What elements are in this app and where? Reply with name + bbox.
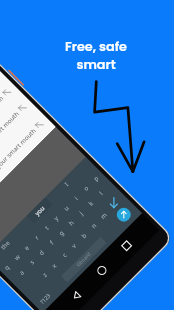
staticText: b xyxy=(79,231,88,239)
staticText: k xyxy=(86,198,95,207)
button[interactable]: Home xyxy=(93,262,110,279)
staticText: h xyxy=(66,218,75,227)
staticText: i xyxy=(72,194,79,201)
staticText: bad mouth xyxy=(0,94,4,187)
staticText: t xyxy=(42,223,50,231)
staticText: v xyxy=(69,241,78,249)
staticText: c xyxy=(60,251,68,258)
staticText: w xyxy=(12,252,21,261)
button[interactable]: Back xyxy=(68,287,85,304)
staticText: x xyxy=(49,261,58,269)
button[interactable]: Recent apps xyxy=(118,237,135,254)
staticText: o xyxy=(81,184,90,192)
staticText: j xyxy=(77,209,84,216)
staticText: Free, safe smart xyxy=(9,38,174,74)
button[interactable]: Gboard xyxy=(61,237,107,283)
button[interactable]: bad mouth xyxy=(0,77,21,192)
staticText: smart mouth xyxy=(0,109,20,203)
staticText: Gboard xyxy=(75,251,93,268)
staticText: f xyxy=(47,238,55,246)
staticText: I xyxy=(63,180,71,188)
staticText: ?123 xyxy=(38,292,52,305)
staticText: u xyxy=(62,203,70,212)
staticText: the xyxy=(0,239,12,251)
staticText: l xyxy=(97,189,104,196)
staticText: z xyxy=(40,270,48,278)
staticText: m xyxy=(98,210,108,220)
staticText: r xyxy=(33,233,40,241)
staticText: p xyxy=(91,174,100,182)
staticText: q xyxy=(2,263,11,271)
staticText: e xyxy=(22,243,30,251)
staticText: s xyxy=(28,258,35,266)
staticText: a xyxy=(17,268,25,276)
staticText: g xyxy=(57,228,65,237)
staticText: your smart mouth xyxy=(0,126,37,220)
staticText: n xyxy=(89,221,98,229)
button[interactable]: your smart mouth xyxy=(0,109,54,225)
button[interactable]: Send xyxy=(114,205,134,225)
staticText: d xyxy=(37,248,45,256)
button[interactable]: smart mouth xyxy=(0,92,37,208)
staticText: you xyxy=(33,204,47,217)
staticText: y xyxy=(52,213,60,222)
button[interactable]: you xyxy=(26,197,53,224)
